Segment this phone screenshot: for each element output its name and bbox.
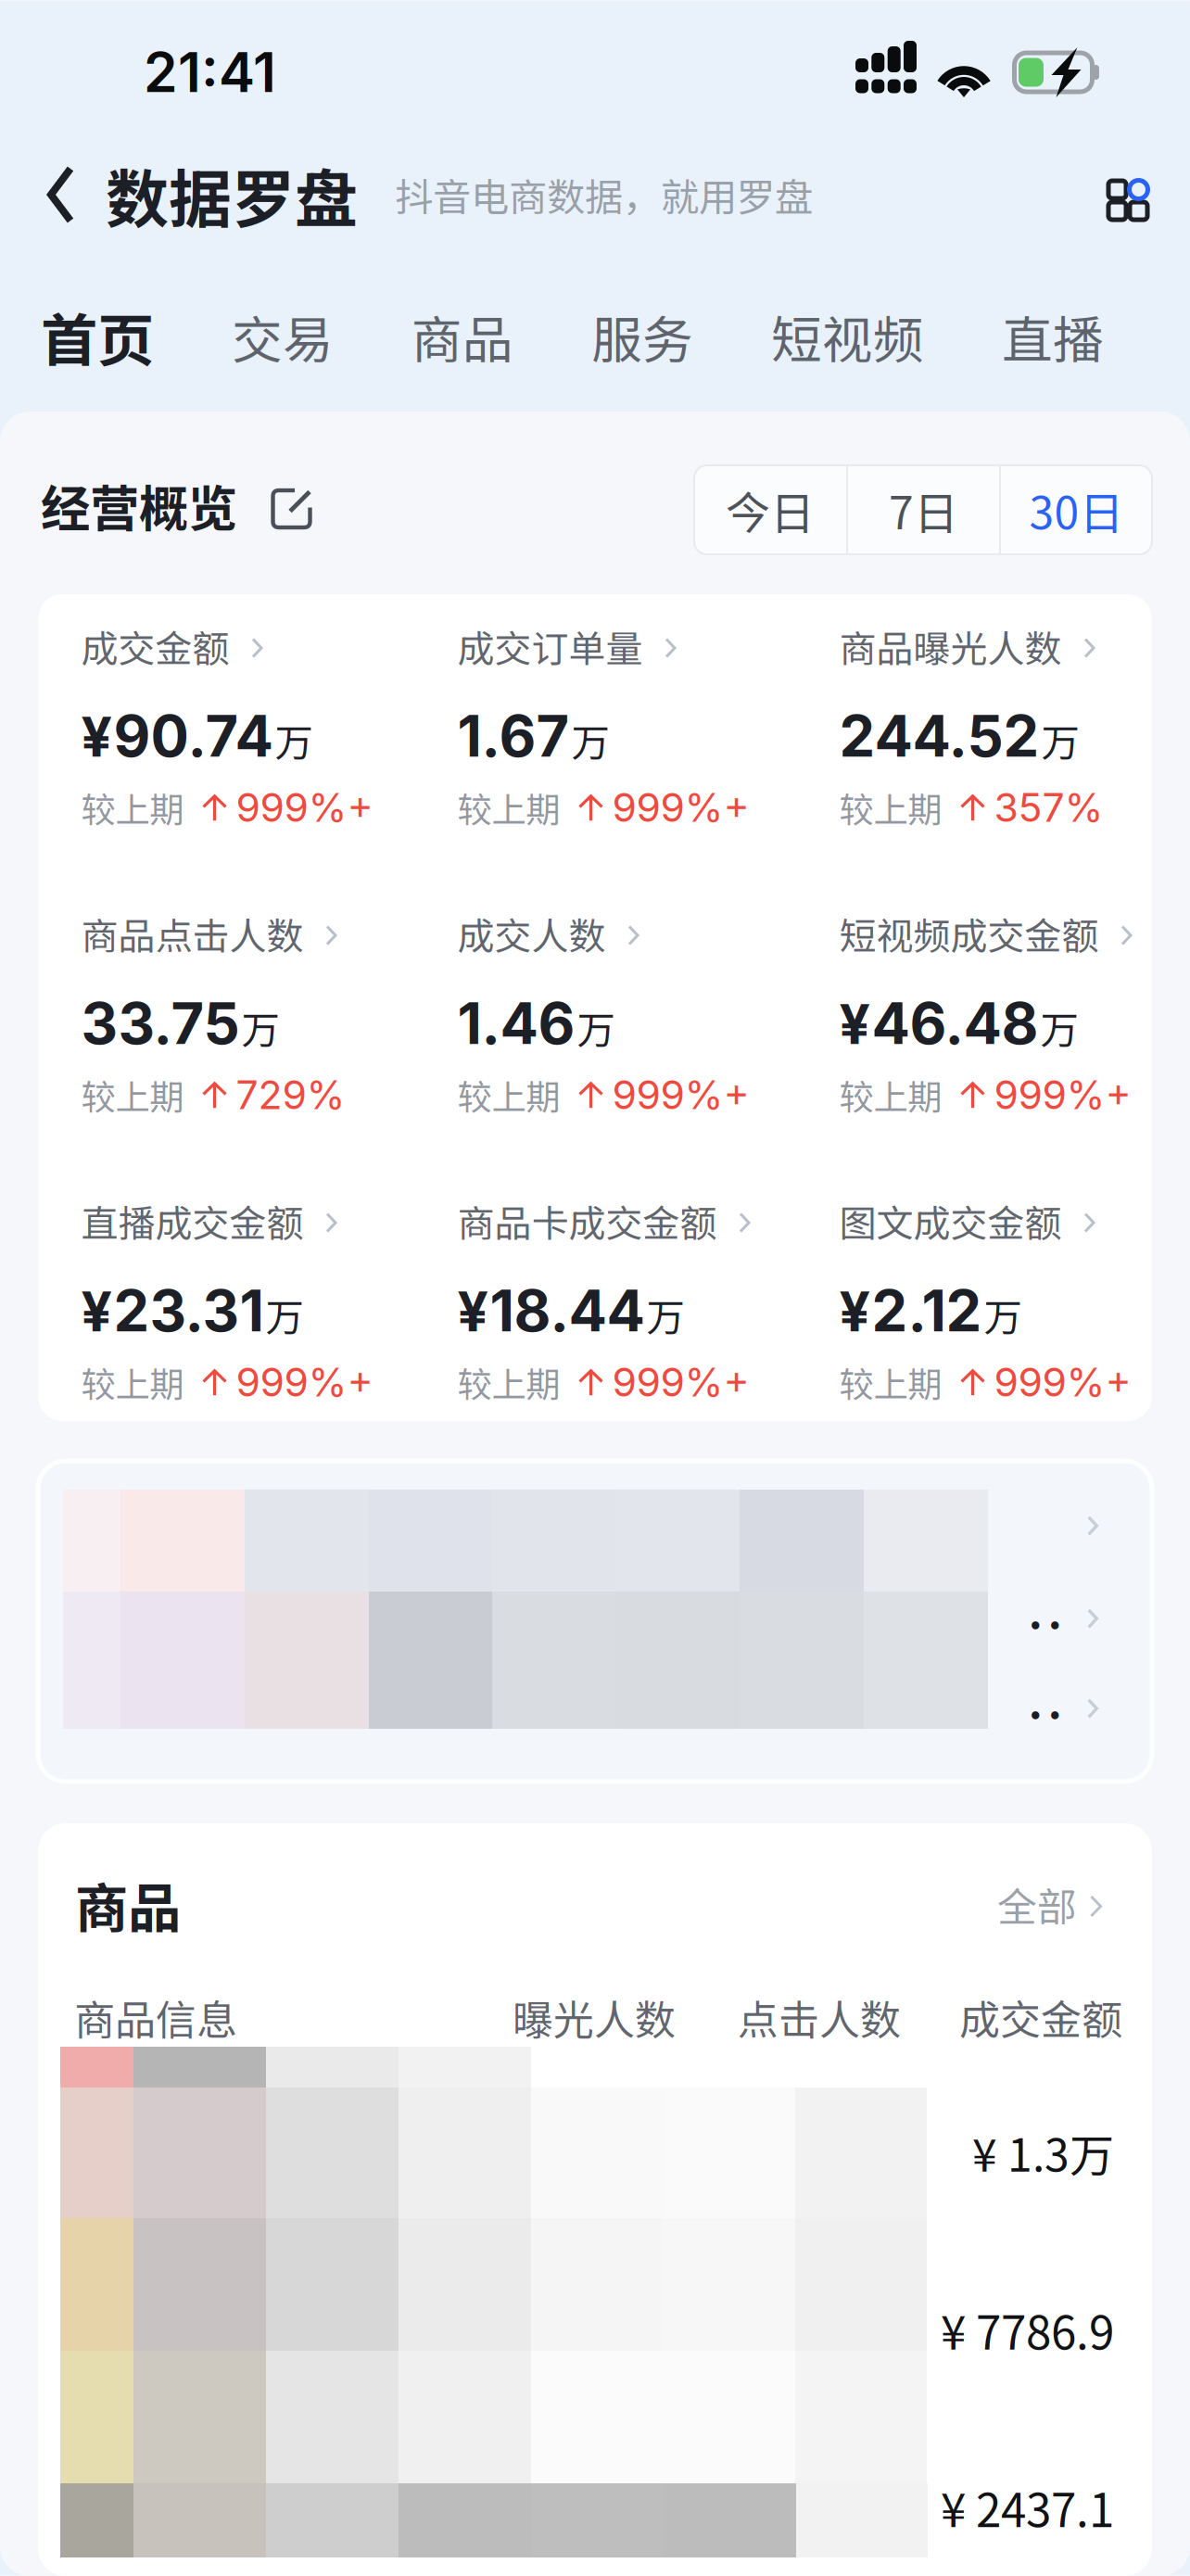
staticText: 2.12 <box>872 1276 982 1345</box>
staticText: ¥ <box>457 1279 488 1344</box>
staticText: 商品 <box>411 300 513 373</box>
staticText: 万 <box>577 1000 615 1055</box>
staticText: 999%+ <box>612 783 749 831</box>
staticText: 万 <box>1040 1000 1078 1055</box>
staticText: 万 <box>241 1000 279 1055</box>
button[interactable]: 今日 <box>694 465 846 554</box>
staticText: 商品点击人数 <box>81 907 304 960</box>
staticText: 曝光人数 <box>513 1988 676 2047</box>
staticText: 较上期 <box>457 1070 560 1120</box>
staticText: 成交金额 <box>959 1988 1122 2047</box>
staticText: 90.74 <box>114 702 273 770</box>
staticText: 较上期 <box>457 782 560 832</box>
staticText: 30日 <box>1029 478 1124 542</box>
staticText: 较上期 <box>81 1070 184 1120</box>
staticText: 服务 <box>591 300 693 373</box>
button[interactable]: 商品点击人数 <box>81 911 457 1120</box>
button[interactable]: 图文成交金额 <box>839 1199 1148 1407</box>
staticText: 短视频成交金额 <box>839 907 1099 960</box>
staticText: 244.52 <box>839 702 1039 770</box>
staticText: 经营概览 <box>41 469 237 541</box>
staticText: 万 <box>984 1287 1022 1342</box>
staticText: 357% <box>994 783 1103 831</box>
staticText: 数据罗盘 <box>106 149 358 240</box>
staticText: 商品 <box>75 1866 181 1943</box>
staticText: 万 <box>266 1287 304 1342</box>
staticText: 999%+ <box>994 1358 1131 1406</box>
staticText: 999%+ <box>236 1358 373 1406</box>
staticText: 较上期 <box>839 1070 942 1120</box>
staticText: 成交订单量 <box>457 619 643 673</box>
button[interactable]: 首页 <box>2 292 193 381</box>
staticText: 首页 <box>41 295 154 378</box>
staticText: 万 <box>1041 712 1079 768</box>
staticText: ¥ <box>81 1279 112 1344</box>
button[interactable]: 直播成交金额 <box>81 1199 457 1407</box>
staticText: 999%+ <box>994 1071 1131 1119</box>
staticText: 短视频 <box>771 300 924 373</box>
button[interactable]: 短视频 <box>732 292 963 381</box>
staticText: 直播 <box>1002 300 1104 373</box>
button[interactable]: 全部 <box>997 1876 1102 1933</box>
button[interactable]: 7日 <box>848 465 999 554</box>
button[interactable]: 成交人数 <box>457 911 839 1120</box>
staticText: 万 <box>571 712 609 768</box>
staticText: 较上期 <box>839 782 942 832</box>
button[interactable]: 商品卡成交金额 <box>457 1199 839 1407</box>
staticText: 直播成交金额 <box>81 1194 304 1248</box>
staticText: 较上期 <box>839 1357 942 1407</box>
staticText: 18.44 <box>490 1276 645 1345</box>
staticText: 点击人数 <box>738 1988 901 2047</box>
button[interactable]: 商品曝光人数 <box>839 624 1148 832</box>
button[interactable]: 服务 <box>552 292 732 381</box>
staticText: 999%+ <box>236 783 373 831</box>
staticText: 46.48 <box>872 989 1038 1058</box>
staticText: 729% <box>236 1071 345 1119</box>
button[interactable]: 30日 <box>1001 465 1152 554</box>
staticText: 较上期 <box>457 1357 560 1407</box>
staticText: 交易 <box>232 300 334 373</box>
staticText: 今日 <box>726 478 815 542</box>
staticText: ¥ 1.3万 <box>972 2120 1114 2184</box>
staticText: ¥ 7786.9 <box>941 2297 1114 2363</box>
button[interactable]: 商品 <box>373 292 552 381</box>
staticText: 商品曝光人数 <box>839 619 1062 673</box>
staticText: 33.75 <box>81 989 240 1058</box>
staticText: 全部 <box>997 1876 1077 1933</box>
staticText: 999%+ <box>612 1071 749 1119</box>
staticText: 1.46 <box>457 989 575 1058</box>
button[interactable]: 成交订单量 <box>457 624 839 832</box>
staticText: 抖音电商数据，就用罗盘 <box>395 167 813 222</box>
button[interactable]: 成交金额 <box>81 624 457 832</box>
staticText: 较上期 <box>81 782 184 832</box>
staticText: 7日 <box>889 478 958 542</box>
staticText: 商品卡成交金额 <box>457 1194 717 1248</box>
staticText: ¥ <box>81 704 112 770</box>
staticText: • • <box>1029 1609 1061 1639</box>
staticText: 万 <box>275 712 313 768</box>
staticText: 成交金额 <box>81 619 229 673</box>
button[interactable]: 交易 <box>193 292 373 381</box>
staticText: 23.31 <box>114 1276 264 1345</box>
staticText: 21:41 <box>144 39 276 105</box>
staticText: 成交人数 <box>457 907 606 960</box>
staticText: • • <box>1029 1699 1061 1729</box>
staticText: ¥ <box>839 1279 870 1344</box>
staticText: ¥ 2437.1 <box>941 2474 1114 2540</box>
staticText: 1.67 <box>457 702 570 770</box>
staticText: 图文成交金额 <box>839 1194 1062 1248</box>
staticText: 999%+ <box>612 1358 749 1406</box>
staticText: ¥ <box>839 991 870 1057</box>
staticText: 较上期 <box>81 1357 184 1407</box>
button[interactable]: 直播 <box>963 292 1143 381</box>
button[interactable]: Apps <box>1085 146 1190 243</box>
staticText: 万 <box>646 1287 684 1342</box>
staticText: 商品信息 <box>74 1988 237 2047</box>
button[interactable]: Back <box>0 146 106 243</box>
button[interactable]: 短视频成交金额 <box>839 911 1148 1120</box>
